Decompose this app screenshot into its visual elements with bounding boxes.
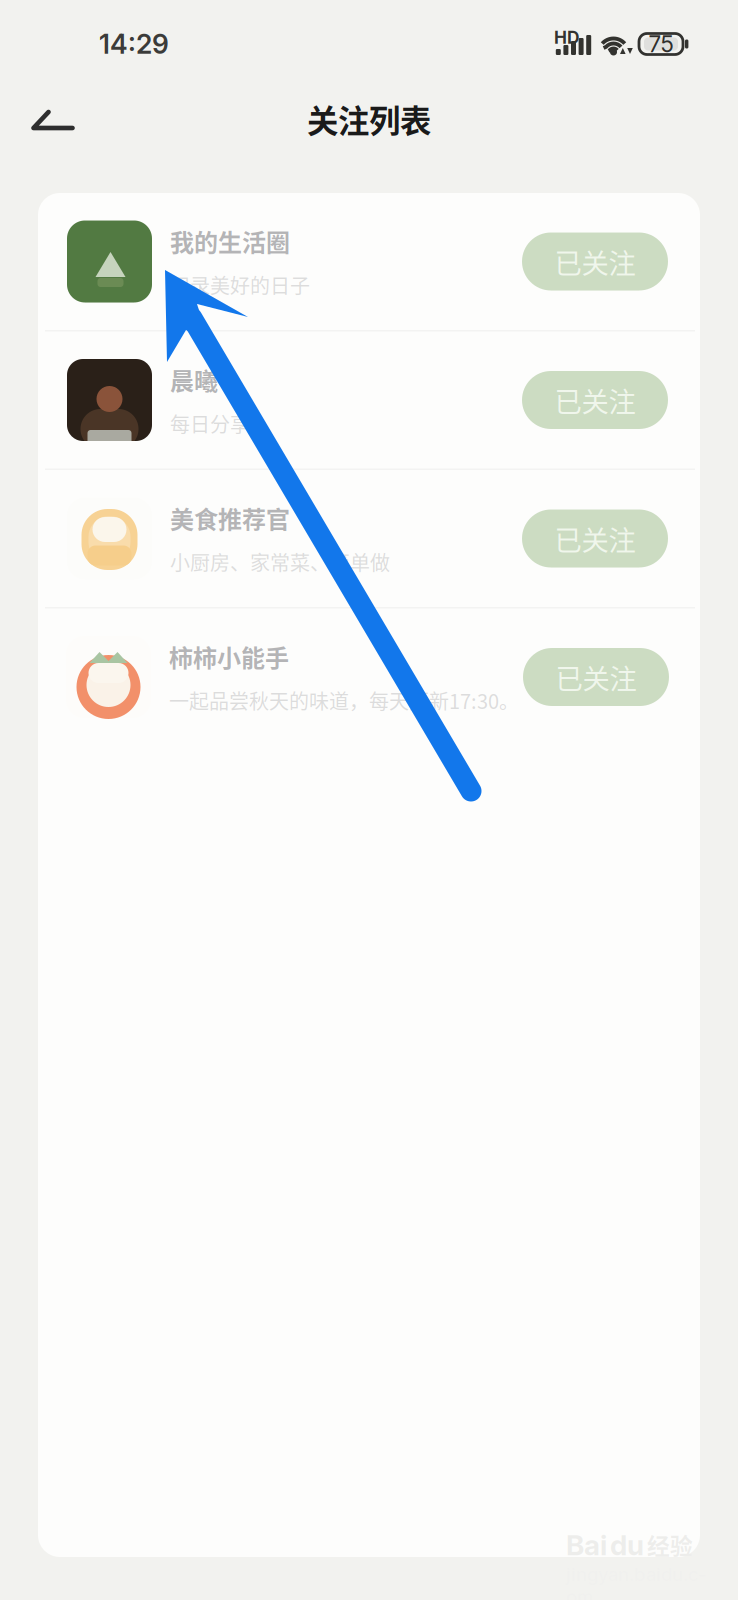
- staticText: 一起品尝秋天的味道，每天更新17:30。: [169, 686, 519, 715]
- staticText: 已关注: [555, 657, 636, 697]
- staticText: 我的生活圈: [170, 224, 290, 258]
- staticText: 每日分享: [170, 409, 250, 438]
- staticText: Bai: [566, 1528, 607, 1562]
- staticText: 美食推荐官: [170, 501, 290, 535]
- staticText: 经验: [647, 1528, 693, 1561]
- staticText: 14:29: [99, 28, 169, 60]
- staticText: 关注列表: [307, 96, 431, 142]
- button[interactable]: Back: [7, 83, 99, 157]
- staticText: 柿柿小能手: [169, 639, 289, 674]
- staticText: 晨曦: [170, 362, 218, 397]
- button[interactable]: 已关注: [523, 648, 669, 706]
- staticText: du: [610, 1528, 644, 1562]
- staticText: 已关注: [554, 380, 635, 420]
- staticText: 小厨房、家常菜、简单做: [170, 547, 390, 576]
- button[interactable]: 已关注: [522, 371, 668, 429]
- staticText: 记录美好的日子: [170, 270, 310, 299]
- staticText: 75: [648, 30, 673, 58]
- staticText: 已关注: [554, 242, 635, 281]
- staticText: HD: [554, 27, 580, 48]
- button[interactable]: 已关注: [522, 232, 668, 290]
- staticText: 已关注: [554, 519, 635, 558]
- button[interactable]: 已关注: [522, 509, 668, 567]
